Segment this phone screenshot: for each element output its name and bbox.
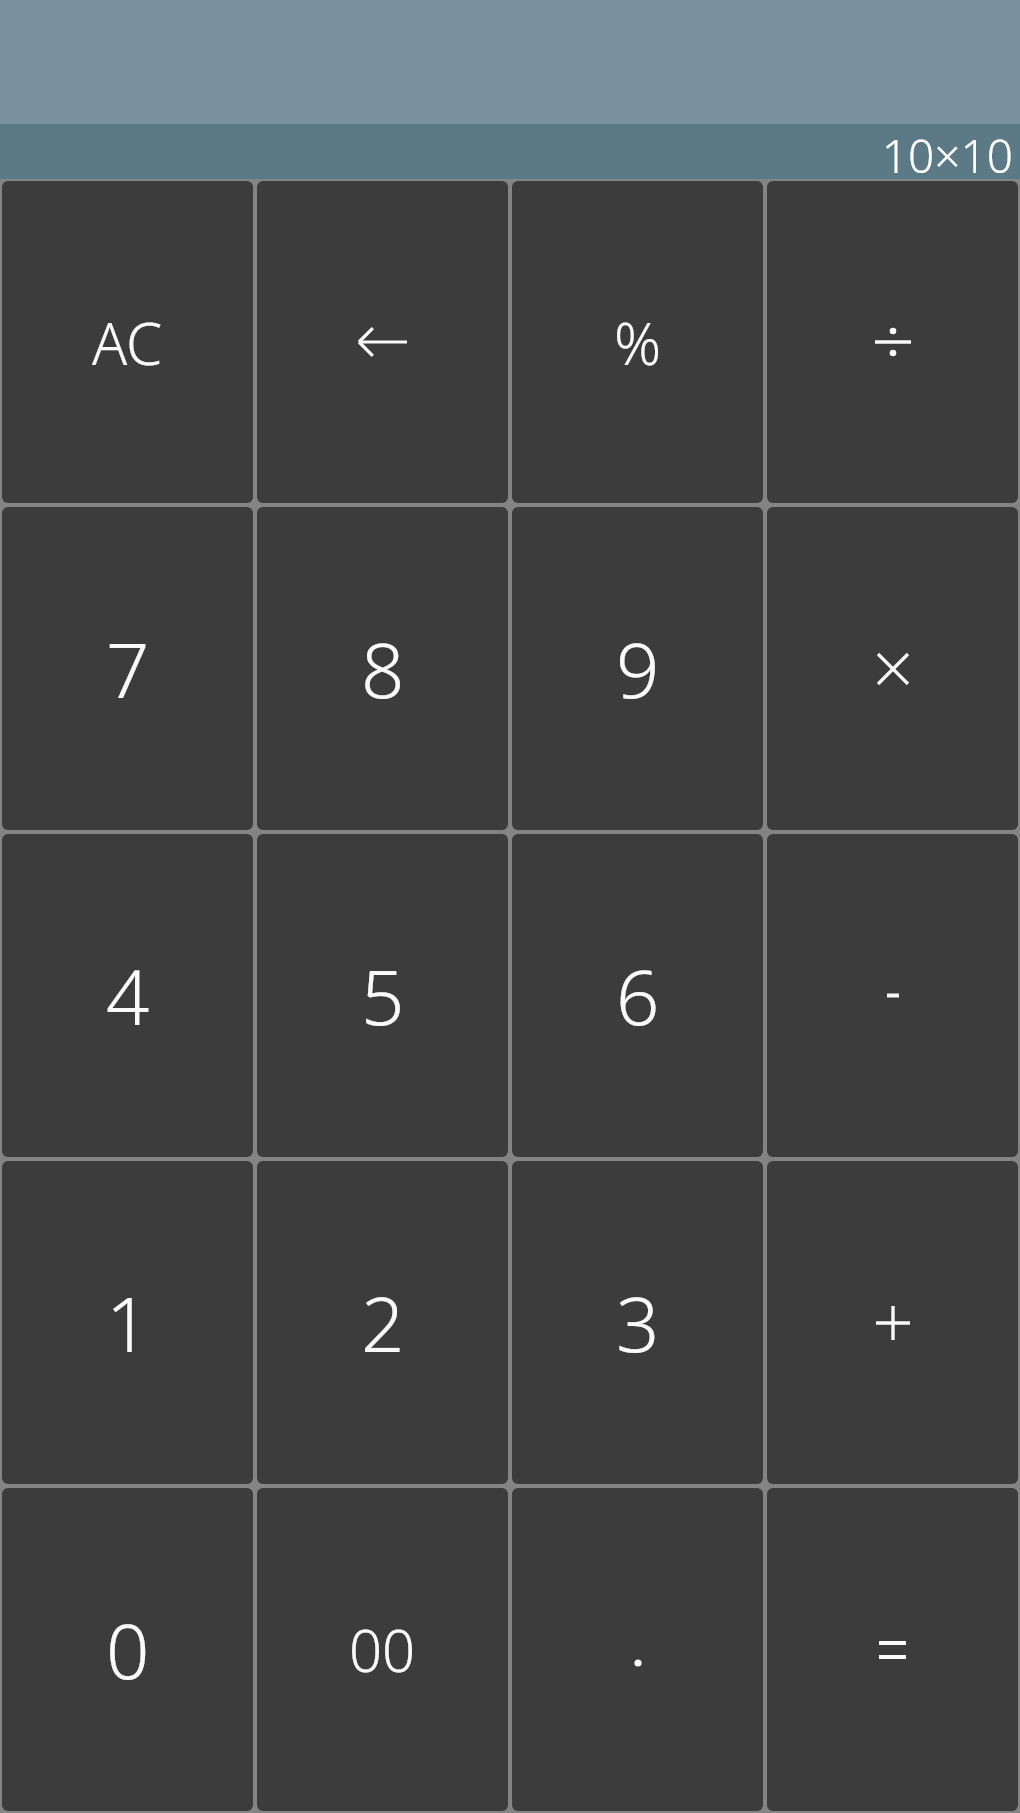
button[interactable]: Equals [767,1488,1018,1811]
staticText: 7 [106,617,150,721]
button[interactable]: 00 [257,1488,508,1811]
staticText: 0 [106,1598,150,1702]
staticText: 9 [616,617,660,721]
button[interactable]: 6 [512,834,763,1157]
staticText: 8 [361,617,405,721]
button[interactable]: 7 [2,507,253,830]
staticText: % [614,303,662,382]
button[interactable]: Backspace [257,181,508,503]
staticText: 10×10 [881,124,1013,179]
button[interactable]: % [512,181,763,503]
staticText: 1 [106,1271,150,1375]
staticText: 3 [616,1271,660,1375]
button[interactable]: 8 [257,507,508,830]
button[interactable]: Multiply [767,507,1018,830]
staticText: 5 [361,944,405,1048]
staticText: 2 [361,1271,405,1375]
button[interactable]: 5 [257,834,508,1157]
staticText: 4 [106,944,150,1048]
button[interactable]: AC [2,181,253,503]
staticText: 00 [349,1610,416,1689]
button[interactable]: Divide [767,181,1018,503]
button[interactable]: 2 [257,1161,508,1484]
staticText: AC [92,303,163,382]
staticText: 6 [616,944,660,1048]
button[interactable]: Decimal point [512,1488,763,1811]
button[interactable]: 9 [512,507,763,830]
button[interactable]: Minus [767,834,1018,1157]
button[interactable]: Plus [767,1161,1018,1484]
button[interactable]: 0 [2,1488,253,1811]
button[interactable]: 3 [512,1161,763,1484]
button[interactable]: 4 [2,834,253,1157]
button[interactable]: 1 [2,1161,253,1484]
